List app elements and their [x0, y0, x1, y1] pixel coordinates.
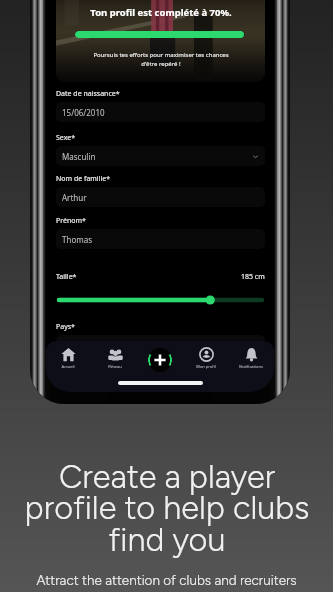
staticText: Date de naissance* [56, 89, 120, 99]
staticText: Thomas [62, 234, 93, 245]
button[interactable]: Réseau [93, 347, 137, 369]
button[interactable]: Notifications [229, 347, 273, 369]
staticText: Notifications [239, 364, 263, 369]
staticText: Mon profil [196, 364, 216, 369]
staticText: Sexe* [56, 133, 76, 143]
staticText: Nom de famille* [56, 174, 111, 184]
button[interactable]: Accueil [46, 347, 90, 369]
staticText: Create a player profile to help clubs fi… [17, 457, 317, 559]
button[interactable]: Mon profil [184, 347, 228, 369]
staticText: Masculin [62, 151, 96, 162]
button[interactable] [56, 335, 265, 355]
button[interactable]: Arthur [56, 187, 265, 207]
staticText: Poursuis tes efforts pour maximiser tes … [93, 51, 229, 67]
button[interactable]: Ton profil est complété à 70%. [56, 0, 265, 82]
staticText: Réseau [108, 364, 122, 369]
staticText: Accueil [61, 364, 75, 369]
staticText: Prénom* [56, 216, 86, 226]
staticText: Attract the attention of clubs and recru… [36, 572, 297, 588]
button[interactable]: 15/06/2010 [56, 102, 265, 122]
staticText: Pays* [56, 322, 75, 332]
staticText: 15/06/2010 [62, 107, 105, 118]
staticText: Taille* [56, 272, 77, 282]
button[interactable]: Thomas [56, 229, 265, 249]
staticText: 185 cm [241, 272, 265, 282]
staticText: Ton profil est complété à 70%. [90, 6, 232, 19]
button[interactable]: Masculin [56, 146, 265, 166]
staticText: Arthur [62, 192, 87, 203]
button[interactable]: Ajouter [148, 348, 172, 372]
button[interactable] [56, 294, 265, 306]
